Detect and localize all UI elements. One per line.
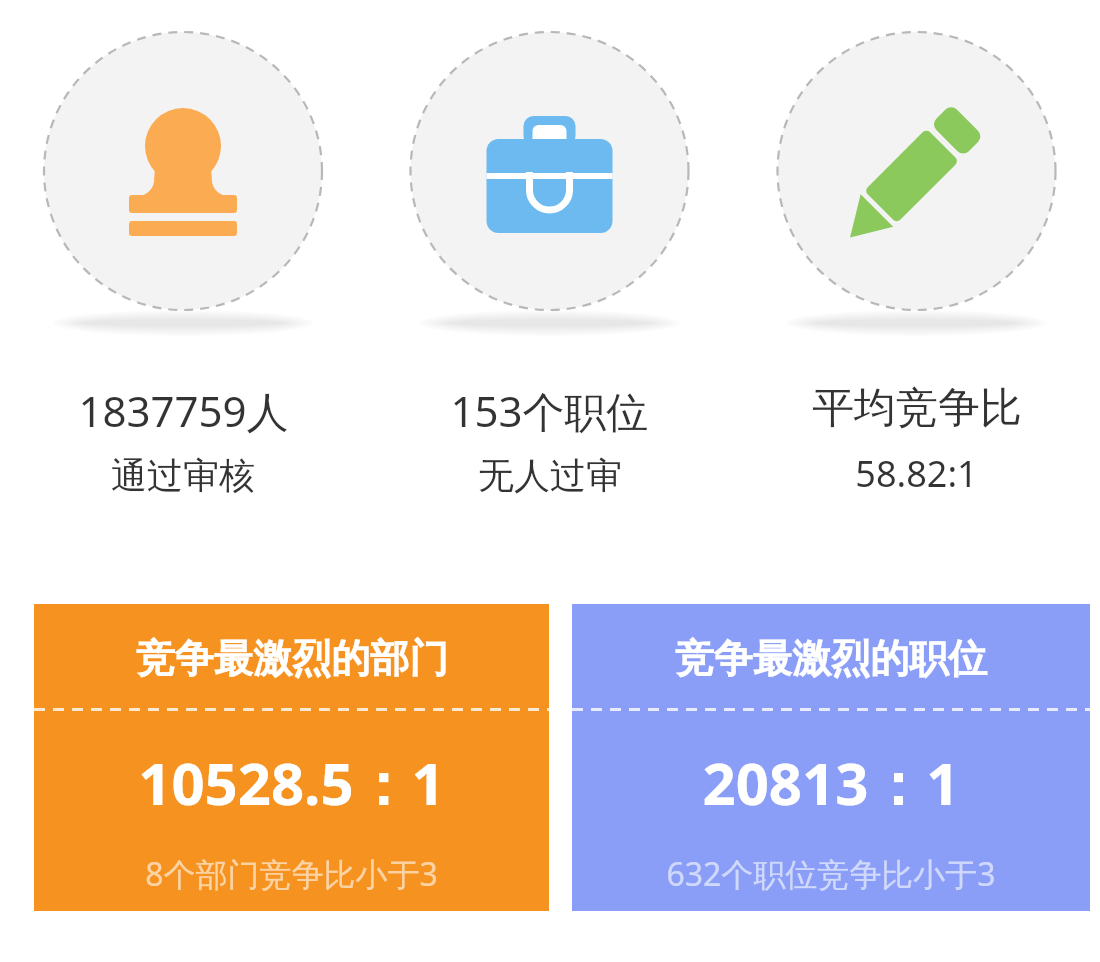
- staticText: 通过审核: [111, 453, 255, 498]
- staticText: 153个职位: [450, 382, 649, 439]
- button[interactable]: Job positions: [366, 0, 733, 370]
- staticText: 平均竞争比: [812, 382, 1022, 435]
- staticText: 竞争最激烈的部门: [136, 634, 448, 683]
- button[interactable]: 竞争最激烈的部门: [34, 604, 549, 911]
- staticText: 1837759人: [78, 382, 289, 439]
- button[interactable]: Average competition ratio: [733, 0, 1100, 370]
- staticText: 竞争最激烈的职位: [675, 634, 987, 683]
- staticText: 632个职位竞争比小于3: [666, 852, 996, 896]
- staticText: 20813：1: [702, 743, 960, 822]
- staticText: 10528.5：1: [138, 743, 445, 822]
- button[interactable]: 竞争最激烈的职位: [572, 604, 1090, 911]
- button[interactable]: Approved applicants: [0, 0, 366, 370]
- button[interactable]: 153个职位: [366, 382, 733, 498]
- button[interactable]: 平均竞争比: [733, 382, 1100, 498]
- staticText: 无人过审: [478, 453, 622, 498]
- button[interactable]: 1837759人: [0, 382, 366, 498]
- staticText: 8个部门竞争比小于3: [145, 852, 438, 896]
- staticText: 58.82:1: [855, 449, 978, 498]
